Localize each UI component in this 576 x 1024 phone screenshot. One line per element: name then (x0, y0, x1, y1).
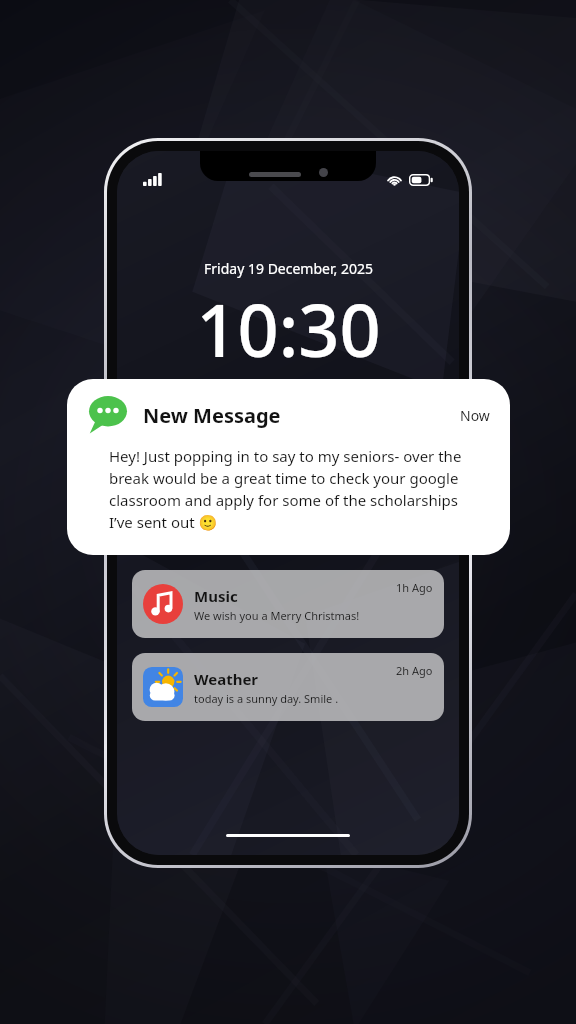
button[interactable]: Music (132, 570, 444, 638)
staticText: 2h Ago (396, 663, 433, 678)
staticText: Hey! Just popping in to say to my senior… (109, 446, 482, 533)
staticText: 10:30 (196, 280, 381, 378)
staticText: New Message (143, 402, 281, 429)
staticText: Friday 19 December, 2025 (204, 259, 373, 278)
staticText: We wish you a Merry Christmas! (194, 608, 360, 623)
staticText: 1h Ago (396, 580, 433, 595)
button[interactable]: New Message (67, 379, 510, 555)
staticText: today is a sunny day. Smile . (194, 691, 339, 706)
staticText: Now (460, 406, 490, 425)
button[interactable]: Weather (132, 653, 444, 721)
staticText: Music (194, 586, 238, 606)
staticText: Weather (194, 669, 259, 689)
